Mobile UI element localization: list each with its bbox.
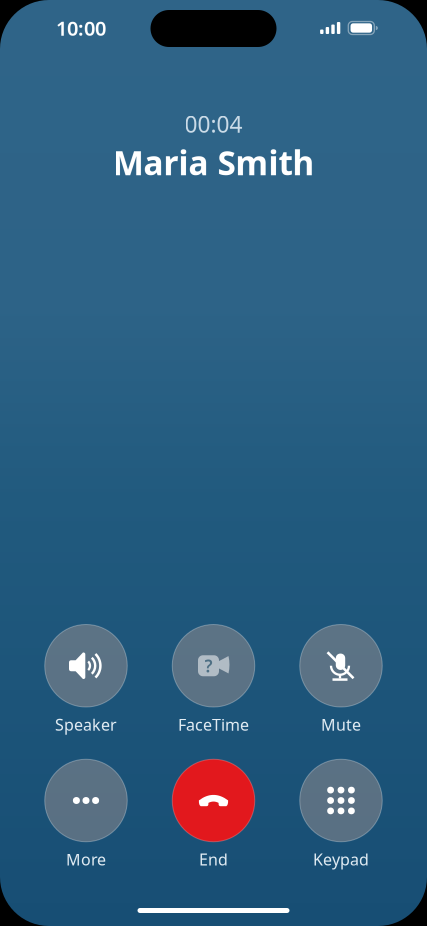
staticText: More	[66, 849, 106, 870]
button[interactable]: Speaker	[22, 624, 150, 735]
button[interactable]: Mute	[277, 624, 405, 735]
staticText: Maria Smith	[112, 140, 314, 184]
staticText: Mute	[321, 714, 361, 735]
staticText: Speaker	[55, 714, 117, 735]
button[interactable]: ?	[150, 624, 277, 735]
staticText: End	[199, 849, 228, 870]
staticText: Keypad	[313, 849, 369, 870]
staticText: 10:00	[56, 15, 106, 41]
staticText: FaceTime	[178, 714, 249, 735]
button[interactable]: End	[150, 759, 277, 870]
button[interactable]: More	[22, 759, 150, 870]
staticText: ?	[204, 654, 212, 677]
staticText: 00:04	[184, 109, 242, 139]
button[interactable]: Keypad	[277, 759, 405, 870]
